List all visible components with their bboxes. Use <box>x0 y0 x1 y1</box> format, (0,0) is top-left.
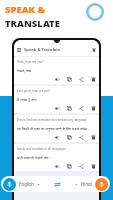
button[interactable]: Speak Hindi <box>95 178 108 191</box>
button[interactable]: Delete <box>91 77 96 82</box>
button[interactable]: Share <box>79 77 84 82</box>
button[interactable]: Copy <box>67 106 72 111</box>
button[interactable]: Speak <box>55 77 60 82</box>
staticText: Hello, how are you? <box>17 60 44 64</box>
button[interactable]: Hello, how are you? <box>14 57 99 84</box>
staticText: यह किसी भी भाषा का अनुवाद करने के लिए सब… <box>17 126 99 131</box>
staticText: Speak and translate in all languages <box>17 147 66 151</box>
button[interactable]: Copy <box>67 164 72 169</box>
button[interactable]: Copy <box>67 77 72 82</box>
button[interactable]: Delete <box>91 164 96 169</box>
button[interactable]: Swap languages <box>54 181 61 188</box>
staticText: This is the best translator to translate… <box>17 118 87 122</box>
button[interactable]: Share <box>79 106 84 111</box>
staticText: English <box>19 181 34 187</box>
button[interactable]: Delete all <box>92 48 96 52</box>
staticText: I am good, how are you? <box>17 89 51 93</box>
button[interactable]: Delete <box>91 106 96 111</box>
staticText: Speak & Translate <box>24 47 61 53</box>
button[interactable]: Speak English <box>3 178 16 191</box>
staticText: नमस्ते, कैसे <box>17 68 32 73</box>
staticText: TRANSLATE <box>5 17 60 30</box>
staticText: सभी भाषाओं में बोलें और <box>17 155 49 160</box>
button[interactable]: Share <box>79 164 84 169</box>
staticText: मैं अच्छा हूँ आप <box>17 97 37 102</box>
button[interactable]: Speak <box>55 106 60 111</box>
staticText: Hindi <box>81 181 92 187</box>
button[interactable]: Copy <box>67 135 72 140</box>
button[interactable]: Menu <box>17 48 21 52</box>
button[interactable]: Speak and translate in all languages <box>14 144 99 171</box>
button[interactable]: Delete <box>91 135 96 140</box>
button[interactable]: Speak <box>55 135 60 140</box>
staticText: SPEAK & <box>5 3 46 16</box>
button[interactable]: I am good, how are you? <box>14 86 99 113</box>
button[interactable]: Share <box>79 135 84 140</box>
button[interactable]: Speak <box>55 164 60 169</box>
button[interactable]: This is the best translator to translate… <box>14 115 99 142</box>
